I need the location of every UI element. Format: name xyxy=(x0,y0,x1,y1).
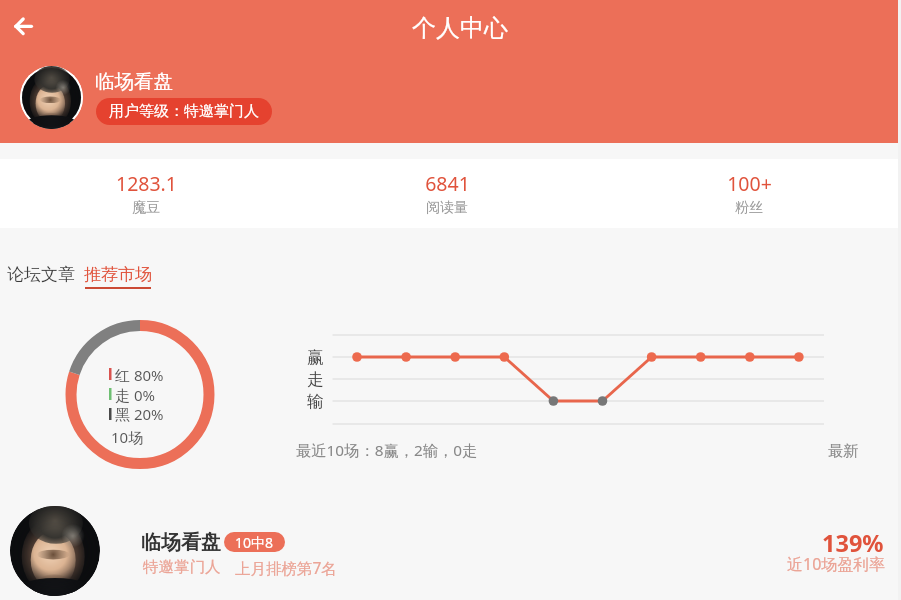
staticText: 特邀掌门人 xyxy=(143,557,221,577)
staticText: 最近10场：8赢，2输，0走 xyxy=(296,440,478,461)
staticText: 10场 xyxy=(111,427,144,447)
staticText: 近10场盈利率 xyxy=(787,553,886,575)
staticText: 魔豆 xyxy=(132,199,160,217)
button[interactable]: Profile photo xyxy=(20,66,83,129)
staticText: 赢 xyxy=(307,347,324,368)
button[interactable]: Expert avatar xyxy=(0,488,901,600)
button[interactable]: Back xyxy=(8,11,40,43)
staticText: 10中8 xyxy=(235,533,274,552)
staticText: 走 0% xyxy=(115,385,155,405)
staticText: 论坛文章 xyxy=(7,264,75,285)
staticText: 1283.1 xyxy=(116,170,177,197)
staticText: 黑 20% xyxy=(115,404,164,424)
staticText: 用户等级：特邀掌门人 xyxy=(109,102,259,121)
button[interactable]: 1283.1 xyxy=(0,159,300,228)
button[interactable]: 100+ xyxy=(600,159,901,228)
staticText: 走 xyxy=(307,369,324,390)
staticText: 6841 xyxy=(425,170,470,197)
staticText: 100+ xyxy=(727,170,772,197)
staticText: 临场看盘 xyxy=(95,69,173,94)
staticText: 最新 xyxy=(828,441,859,460)
staticText: 阅读量 xyxy=(426,199,468,217)
staticText: 临场看盘 xyxy=(141,530,221,555)
button[interactable]: 6841 xyxy=(300,159,600,228)
button[interactable]: 推荐市场 xyxy=(81,256,155,292)
staticText: 红 80% xyxy=(115,365,164,385)
staticText: 推荐市场 xyxy=(84,264,152,285)
staticText: 139% xyxy=(822,527,884,559)
button[interactable]: 用户等级：特邀掌门人 xyxy=(96,98,272,125)
button[interactable]: 论坛文章 xyxy=(2,256,80,292)
staticText: 粉丝 xyxy=(735,199,763,217)
staticText: 上月排榜第7名 xyxy=(235,557,337,578)
staticText: 输 xyxy=(307,391,324,412)
other: Expert avatar xyxy=(10,506,100,596)
staticText: 个人中心 xyxy=(412,13,508,43)
